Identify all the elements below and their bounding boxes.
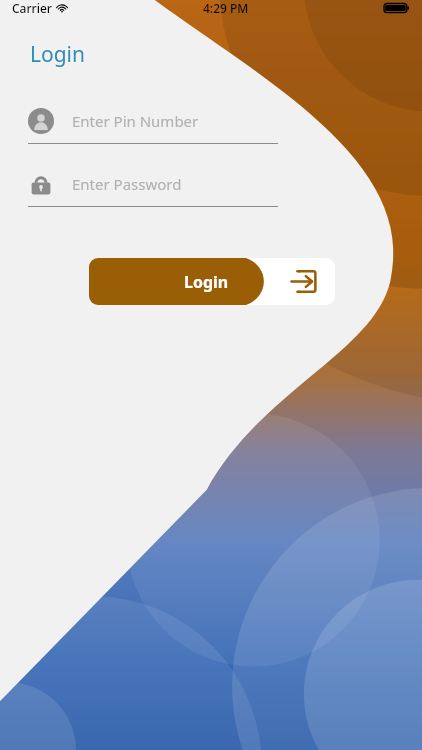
button[interactable]: Login	[89, 258, 335, 305]
staticText: 4:29 PM	[203, 0, 249, 16]
staticText: Login	[184, 271, 229, 293]
staticText: Enter Password	[72, 174, 182, 194]
staticText: Carrier	[12, 0, 52, 16]
staticText: Enter Pin Number	[72, 111, 199, 131]
other: Login	[291, 268, 318, 295]
staticText: Login	[30, 40, 86, 69]
